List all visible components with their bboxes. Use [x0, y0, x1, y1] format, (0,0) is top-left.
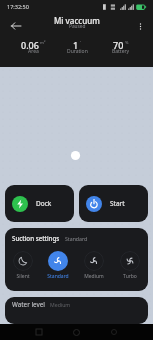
button[interactable]: Water level — [5, 297, 148, 324]
staticText: Standard — [47, 273, 69, 280]
button[interactable]: Start — [79, 185, 148, 222]
staticText: 70 — [113, 39, 124, 51]
staticText: Medium — [50, 301, 71, 308]
staticText: 0.06 — [21, 39, 39, 51]
staticText: 17:32:50 — [7, 3, 29, 10]
staticText: Suction settings — [12, 234, 60, 242]
button[interactable]: Back — [105, 324, 123, 340]
staticText: Silent — [16, 273, 30, 280]
button[interactable]: Back — [7, 17, 25, 35]
button[interactable]: Standard — [40, 251, 76, 278]
button[interactable]: Home — [67, 324, 85, 340]
staticText: % — [125, 40, 129, 46]
staticText: Standard — [65, 235, 88, 242]
staticText: ' — [80, 40, 81, 46]
staticText: Dock — [36, 199, 52, 208]
staticText: m² — [40, 40, 46, 46]
button[interactable]: Turbo — [112, 251, 148, 278]
staticText: Battery — [112, 48, 130, 55]
staticText: Start — [110, 199, 125, 208]
staticText: Paused — [69, 23, 86, 30]
staticText: Water level — [12, 300, 45, 308]
button[interactable]: Dock — [5, 185, 74, 222]
staticText: Duration — [67, 48, 88, 55]
staticText: Medium — [84, 273, 104, 280]
button[interactable]: Silent — [5, 251, 40, 278]
staticText: Area — [28, 48, 39, 55]
button[interactable]: More options — [132, 18, 148, 34]
button[interactable]: Recents — [30, 324, 48, 340]
button[interactable]: Medium — [76, 251, 112, 278]
staticText: Mi vaccuum — [54, 15, 100, 26]
staticText: Turbo — [123, 273, 137, 280]
staticText: 1 — [73, 39, 79, 51]
